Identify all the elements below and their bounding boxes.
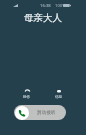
staticText: 信息: [55, 95, 63, 100]
staticText: 16:38: [40, 3, 51, 9]
button[interactable]: Mute: [19, 90, 35, 100]
staticText: 滑动接听: [37, 110, 56, 116]
staticText: 静音: [23, 95, 31, 100]
button[interactable]: 滑动接听: [14, 105, 66, 120]
button[interactable]: Message: [51, 90, 67, 100]
staticText: 母亲大人: [24, 12, 62, 24]
staticText: 100%: [55, 3, 66, 9]
